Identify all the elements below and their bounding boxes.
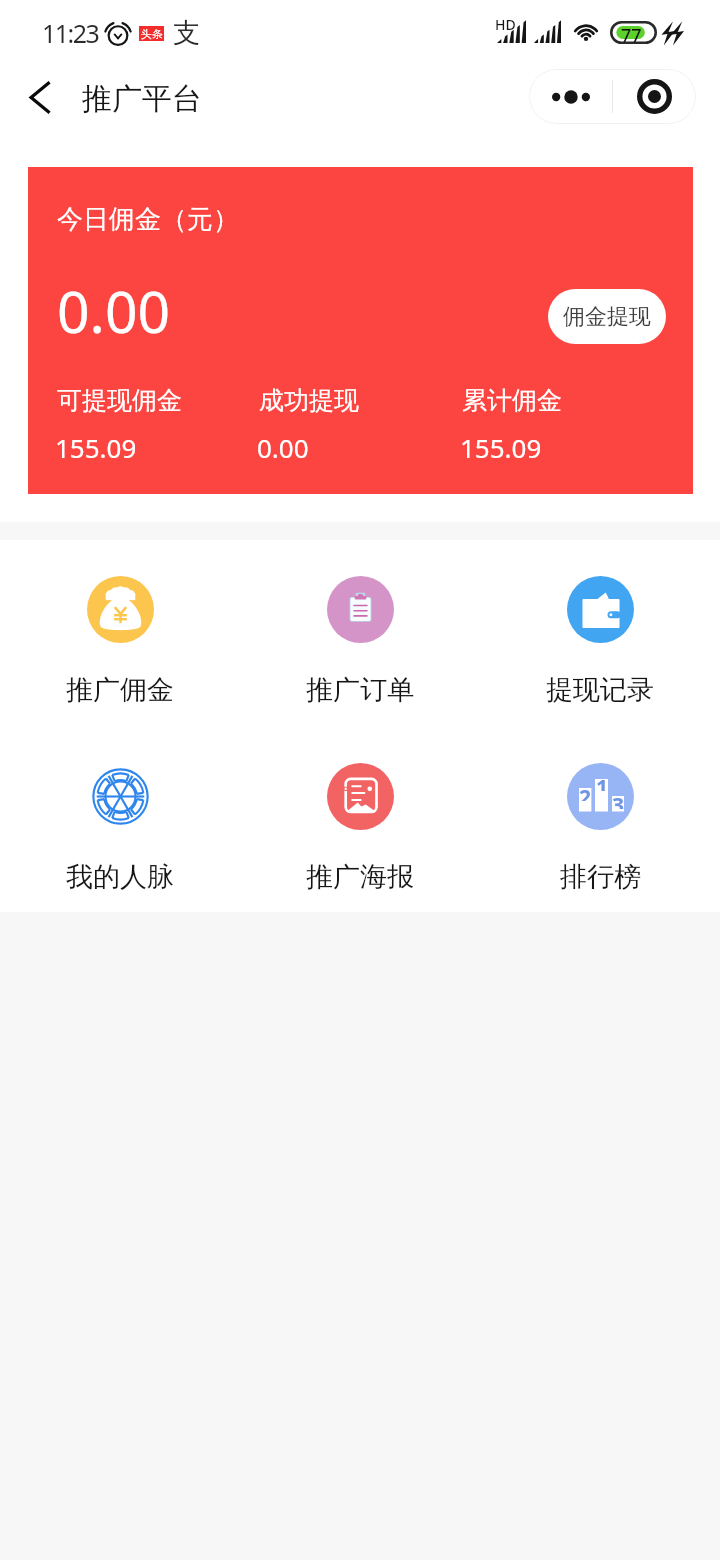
button[interactable]: Close (613, 69, 696, 124)
staticText: 推广平台 (82, 80, 202, 118)
staticText: 2 (579, 783, 591, 801)
button[interactable]: 提现记录 (516, 563, 684, 713)
button[interactable]: 推广海报 (276, 750, 444, 900)
staticText: 可提现佣金 (57, 385, 182, 416)
staticText: 0.00 (57, 272, 171, 350)
staticText: 头条 (141, 27, 163, 41)
staticText: 推广佣金 (66, 673, 174, 707)
staticText: HD (495, 15, 516, 34)
button[interactable]: Back (14, 72, 64, 122)
staticText: 1 (596, 773, 608, 791)
button[interactable]: 2 (516, 750, 684, 900)
staticText: 支 (173, 16, 200, 50)
staticText: 推广订单 (306, 673, 414, 707)
staticText: 155.09 (460, 430, 542, 465)
staticText: 我的人脉 (66, 860, 174, 894)
staticText: 3 (612, 791, 624, 809)
staticText: 佣金提现 (563, 303, 651, 331)
button[interactable]: 推广佣金 (36, 563, 204, 713)
button[interactable]: 我的人脉 (36, 750, 204, 900)
staticText: 成功提现 (259, 385, 359, 416)
staticText: 提现记录 (546, 673, 654, 707)
staticText: 排行榜 (560, 860, 641, 894)
staticText: 155.09 (55, 430, 137, 465)
button[interactable]: 推广订单 (276, 563, 444, 713)
staticText: 推广海报 (306, 860, 414, 894)
button[interactable]: 佣金提现 (548, 289, 666, 344)
staticText: 0.00 (257, 430, 309, 465)
button[interactable]: More options (529, 69, 612, 124)
staticText: 累计佣金 (462, 385, 562, 416)
staticText: 今日佣金（元） (57, 203, 239, 236)
staticText: 11:23 (42, 16, 99, 50)
staticText: 77 (621, 23, 642, 48)
